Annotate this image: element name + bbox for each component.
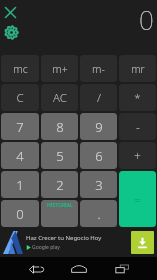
button[interactable]: = [119,171,156,227]
button[interactable]: 1 [1,171,39,198]
button[interactable]: 6 [80,142,117,169]
staticText: / [97,90,101,106]
button[interactable]: 7 [1,113,39,140]
button[interactable]: Settings [1,22,21,42]
staticText: 9 [95,118,103,136]
staticText: * [134,90,141,106]
button[interactable]: - [119,113,156,140]
button[interactable]: * [119,84,156,111]
button[interactable]: 4 [1,142,39,169]
button[interactable]: Back [25,259,47,279]
button[interactable]: mc [1,55,39,82]
button[interactable]: + [119,142,156,169]
button[interactable]: Home [68,259,90,279]
button[interactable]: . [80,200,117,227]
staticText: 0 [139,2,154,37]
staticText: AC [53,90,67,106]
staticText: 0 [16,205,24,223]
button[interactable]: mr [119,55,156,82]
button[interactable]: / [80,84,117,111]
button[interactable]: 2 [41,171,78,198]
staticText: 7 [16,118,24,136]
button[interactable]: 5 [41,142,78,169]
button[interactable]: m+ [41,55,78,82]
staticText: 8 [56,118,64,136]
staticText: m+ [52,62,68,76]
staticText: 1 [16,176,24,194]
button[interactable]: 3 [80,171,117,198]
button[interactable]: HISTORIAL [41,200,78,227]
button[interactable]: m- [80,55,117,82]
button[interactable]: 8 [41,113,78,140]
button[interactable]: Install [131,231,154,254]
staticText: 6 [95,147,103,165]
button[interactable]: Recents [111,259,133,279]
staticText: 4 [16,147,24,165]
staticText: 2 [56,176,64,194]
button[interactable]: Haz Crecer tu Negocio Hoy [0,228,157,257]
button[interactable]: Close [0,2,20,22]
staticText: 3 [95,176,103,194]
staticText: mc [13,62,28,76]
staticText: . [97,205,101,223]
staticText: mr [131,62,145,76]
button[interactable]: 9 [80,113,117,140]
staticText: HISTORIAL [47,202,73,209]
staticText: = [134,192,141,207]
staticText: Haz Crecer tu Negocio Hoy [26,234,102,242]
staticText: m- [92,62,105,76]
staticText: - [136,119,140,135]
staticText: Google play [32,244,60,251]
staticText: + [134,148,141,164]
staticText: C [16,90,24,106]
button[interactable]: 0 [1,200,39,227]
button[interactable]: AC [41,84,78,111]
staticText: 5 [56,147,64,165]
button[interactable]: C [1,84,39,111]
